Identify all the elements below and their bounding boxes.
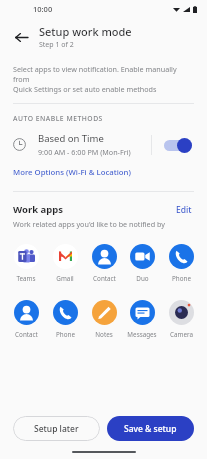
- button[interactable]: Save & setup: [107, 416, 194, 441]
- staticText: AUTO ENABLE METHODS: [13, 114, 103, 123]
- staticText: Setup later: [34, 423, 79, 435]
- staticText: Camera: [170, 330, 193, 339]
- staticText: Messages: [127, 330, 157, 339]
- button[interactable]: Back: [8, 24, 34, 50]
- button[interactable]: Camera: [163, 300, 199, 339]
- button[interactable]: Contact: [8, 300, 44, 339]
- button[interactable]: Phone: [47, 300, 83, 339]
- staticText: Notes: [95, 330, 113, 339]
- staticText: Save & setup: [124, 423, 177, 435]
- staticText: Duo: [136, 274, 149, 283]
- staticText: Phone: [56, 330, 75, 339]
- staticText: Work apps: [13, 203, 64, 216]
- button[interactable]: Teams: [8, 244, 44, 283]
- button[interactable]: Messages: [124, 300, 160, 339]
- button[interactable]: Notes: [86, 300, 122, 339]
- button[interactable]: Contact: [86, 244, 122, 283]
- button[interactable]: Phone: [163, 244, 199, 283]
- staticText: Phone: [172, 274, 191, 283]
- staticText: Based on Time: [38, 132, 104, 145]
- staticText: Edit: [176, 204, 192, 216]
- button[interactable]: Gmail: [47, 244, 83, 283]
- button[interactable]: Based on Time: [0, 132, 207, 157]
- button[interactable]: Duo: [124, 244, 160, 283]
- button[interactable]: More Options (Wi-Fi & Location): [13, 167, 131, 178]
- staticText: Work related apps you'd like to be notif…: [13, 219, 165, 229]
- staticText: Select apps to view notification. Enable…: [13, 64, 194, 94]
- staticText: Contact: [15, 330, 38, 339]
- staticText: Step 1 of 2: [39, 40, 74, 50]
- staticText: Teams: [16, 274, 36, 283]
- button[interactable]: Edit: [174, 203, 194, 217]
- staticText: Contact: [93, 274, 116, 283]
- staticText: 9:00 AM - 6:00 PM (Mon-Fri): [38, 147, 131, 157]
- button[interactable]: Toggle based on time: [164, 137, 192, 153]
- button[interactable]: Setup later: [13, 416, 100, 441]
- staticText: 10:00: [33, 4, 53, 14]
- staticText: Gmail: [56, 274, 74, 283]
- staticText: Setup work mode: [39, 24, 132, 39]
